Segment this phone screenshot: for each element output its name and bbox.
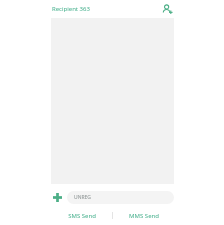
staticText: UNREG xyxy=(74,194,91,201)
button[interactable]: MMS Send xyxy=(113,212,174,220)
button[interactable]: Attach xyxy=(51,191,64,204)
staticText: SMS Send xyxy=(68,212,96,220)
staticText: MMS Send xyxy=(129,212,159,220)
button[interactable]: Recipient 363 xyxy=(51,4,91,14)
staticText: Recipient 363 xyxy=(52,5,90,13)
button[interactable]: UNREG xyxy=(67,191,174,204)
button[interactable]: Add recipient xyxy=(160,2,174,16)
button[interactable]: SMS Send xyxy=(51,212,112,220)
